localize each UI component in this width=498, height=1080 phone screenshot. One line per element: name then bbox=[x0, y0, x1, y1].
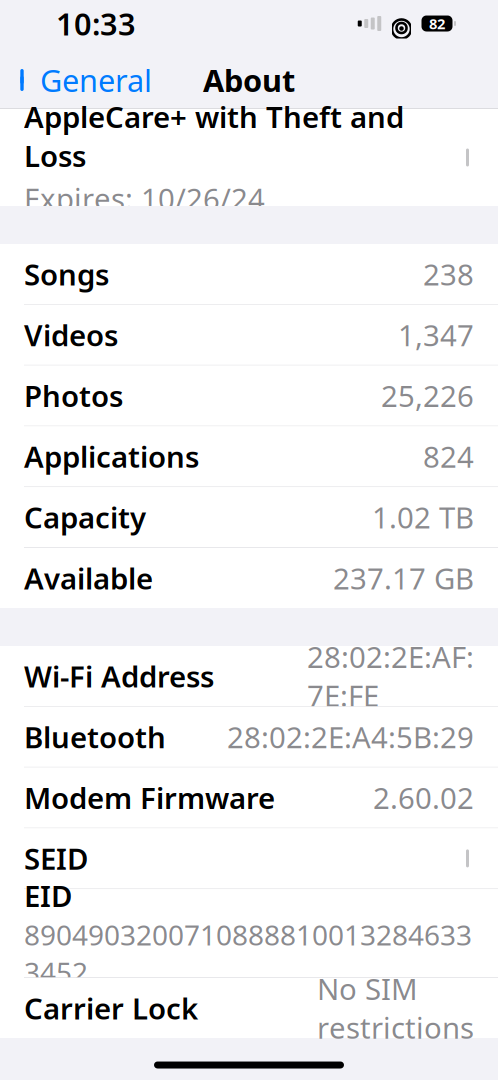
button[interactable]: General bbox=[0, 51, 162, 109]
staticText: Photos bbox=[24, 376, 123, 415]
staticText: Expires: 10/26/24 bbox=[24, 179, 265, 218]
button[interactable]: Wi-Fi Address bbox=[0, 646, 498, 706]
staticText: 28:02:2E:AF:7E:FE bbox=[307, 637, 474, 715]
button[interactable]: Bluetooth bbox=[0, 707, 498, 767]
button[interactable]: Photos bbox=[0, 366, 498, 426]
button[interactable]: SEID bbox=[0, 828, 498, 888]
button[interactable]: Modem Firmware bbox=[0, 768, 498, 828]
staticText: Videos bbox=[24, 315, 118, 354]
button[interactable]: Videos bbox=[0, 305, 498, 365]
button[interactable]: Applications bbox=[0, 426, 498, 486]
staticText: Songs bbox=[24, 254, 109, 293]
button[interactable]: EID bbox=[0, 889, 498, 977]
staticText: 2.60.02 bbox=[373, 778, 474, 817]
button[interactable]: AppleCare+ with Theft and Loss bbox=[0, 109, 498, 206]
staticText: 28:02:2E:A4:5B:29 bbox=[227, 717, 474, 756]
staticText: 10:33 bbox=[56, 3, 136, 44]
staticText: AppleCare+ with Theft and Loss bbox=[24, 97, 404, 175]
staticText: SEID bbox=[24, 839, 88, 878]
staticText: Wi-Fi Address bbox=[24, 656, 214, 695]
button[interactable]: Carrier Lock bbox=[0, 978, 498, 1038]
staticText: Carrier Lock bbox=[24, 988, 198, 1027]
staticText: EID bbox=[24, 876, 72, 915]
staticText: 1,347 bbox=[398, 315, 474, 354]
staticText: Available bbox=[24, 558, 153, 597]
staticText: About bbox=[203, 60, 295, 100]
staticText: General bbox=[40, 60, 152, 100]
staticText: 237.17 GB bbox=[333, 558, 474, 597]
staticText: 89049032007108888100132846333452 bbox=[24, 916, 472, 990]
button[interactable]: Available bbox=[0, 548, 498, 608]
staticText: 1.02 TB bbox=[372, 498, 474, 537]
staticText: 25,226 bbox=[381, 376, 474, 415]
button[interactable]: Songs bbox=[0, 244, 498, 304]
staticText: 82 bbox=[429, 14, 445, 33]
staticText: Applications bbox=[24, 437, 199, 476]
staticText: Bluetooth bbox=[24, 717, 166, 756]
staticText: Capacity bbox=[24, 498, 146, 537]
staticText: No SIM restrictions bbox=[317, 969, 474, 1047]
staticText: Modem Firmware bbox=[24, 778, 275, 817]
staticText: 824 bbox=[423, 437, 474, 476]
button[interactable]: Capacity bbox=[0, 487, 498, 547]
staticText: 238 bbox=[423, 254, 474, 293]
